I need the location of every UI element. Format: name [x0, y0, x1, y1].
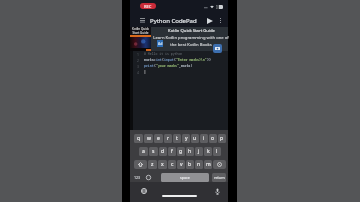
staticText: input	[164, 58, 174, 62]
button[interactable]: Backspace	[213, 160, 226, 169]
button[interactable]: More options	[215, 15, 226, 26]
staticText: b	[188, 161, 192, 168]
button[interactable]: m	[204, 160, 212, 169]
staticText: u	[193, 135, 197, 142]
staticText: ))	[207, 58, 211, 62]
button[interactable]: Menu	[135, 14, 149, 27]
staticText: o	[211, 135, 215, 142]
button[interactable]: Change keyboard	[139, 186, 149, 196]
staticText: int	[156, 58, 162, 62]
staticText: k	[207, 148, 210, 155]
staticText: Kotlin Quick Start Guide	[168, 28, 215, 34]
staticText: (	[174, 58, 176, 62]
staticText: r	[167, 135, 170, 142]
button[interactable]: p	[218, 134, 226, 143]
staticText: y	[185, 135, 188, 142]
button[interactable]: Emoji	[144, 173, 152, 182]
staticText: v	[180, 161, 183, 168]
staticText: (	[154, 64, 156, 68]
button[interactable]: return	[212, 173, 226, 182]
staticText: g	[179, 148, 183, 155]
button[interactable]: g	[177, 147, 185, 156]
staticText: 1	[137, 52, 139, 57]
staticText: f	[171, 148, 173, 155]
staticText: m	[206, 161, 211, 168]
staticText: Python CodePad	[150, 17, 197, 25]
staticText: e	[157, 135, 160, 142]
staticText: w	[147, 135, 151, 142]
button[interactable]: space	[161, 173, 209, 182]
staticText: a	[142, 148, 145, 155]
staticText: "Enter marks)\n"	[176, 58, 207, 62]
button[interactable]: Voice input	[212, 186, 222, 196]
staticText: ,marks)	[179, 64, 193, 68]
staticText: space	[180, 175, 190, 180]
button[interactable]: y	[182, 134, 190, 143]
staticText: 123	[134, 175, 141, 180]
button[interactable]: c	[168, 160, 176, 169]
button[interactable]: Screenshot	[213, 44, 222, 53]
button[interactable]: e	[154, 134, 163, 143]
button[interactable]: Kotlin Quick Start Guide	[130, 27, 228, 51]
staticText: q	[137, 135, 141, 142]
staticText: REC	[144, 4, 152, 9]
staticText: Learn Kotlin programming with one of the…	[153, 35, 229, 47]
button[interactable]: r	[164, 134, 172, 143]
button[interactable]: j	[195, 147, 203, 156]
staticText: print	[144, 64, 154, 68]
staticText: i	[203, 135, 205, 142]
button[interactable]: f	[168, 147, 176, 156]
button[interactable]: Ad	[157, 40, 163, 47]
staticText: n	[197, 161, 201, 168]
staticText: x	[161, 161, 164, 168]
staticText: p	[220, 135, 224, 142]
button[interactable]: t	[173, 134, 181, 143]
button[interactable]: h	[186, 147, 194, 156]
staticText: Kotlin Quick Start Guide	[132, 27, 149, 35]
button[interactable]: Run	[204, 15, 215, 26]
staticText: Ad	[158, 41, 163, 46]
button[interactable]: a	[139, 147, 148, 156]
button[interactable]: 123	[133, 173, 141, 182]
button[interactable]: s	[149, 147, 158, 156]
staticText: d	[161, 148, 165, 155]
button[interactable]: k	[204, 147, 212, 156]
button[interactable]: o	[209, 134, 217, 143]
staticText: z	[151, 161, 154, 168]
staticText: l	[216, 148, 218, 155]
staticText: 4	[137, 70, 139, 75]
button[interactable]: v	[177, 160, 185, 169]
staticText: h	[188, 148, 192, 155]
staticText: "your marks"	[156, 64, 179, 68]
staticText: marks=	[144, 58, 156, 62]
button[interactable]: n	[195, 160, 203, 169]
button[interactable]: w	[144, 134, 153, 143]
staticText: j	[198, 148, 200, 155]
staticText: (	[162, 58, 164, 62]
button[interactable]: d	[159, 147, 167, 156]
staticText: # Hello it is python	[144, 52, 183, 56]
staticText: s	[152, 148, 155, 155]
button[interactable]: u	[191, 134, 199, 143]
staticText: t	[176, 135, 178, 142]
staticText: c	[171, 161, 174, 168]
button[interactable]: z	[148, 160, 157, 169]
button[interactable]: Shift	[134, 160, 147, 169]
button[interactable]: l	[213, 147, 221, 156]
button[interactable]: i	[200, 134, 208, 143]
staticText: |	[144, 70, 146, 74]
staticText: 2	[137, 58, 139, 63]
button[interactable]: b	[186, 160, 194, 169]
staticText: return	[214, 175, 225, 180]
button[interactable]: q	[134, 134, 143, 143]
button[interactable]: x	[158, 160, 167, 169]
staticText: 3	[137, 64, 139, 69]
